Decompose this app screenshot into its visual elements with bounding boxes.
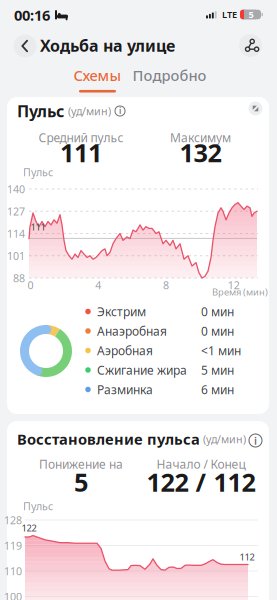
staticText: 0 мин (201, 323, 234, 339)
staticText: 12 (228, 278, 240, 292)
staticText: Пульс (23, 165, 53, 179)
staticText: 8 (163, 278, 169, 292)
staticText: Время (мин) (212, 286, 268, 298)
staticText: 122 / 112 (146, 465, 255, 499)
staticText: 101 (7, 249, 25, 263)
staticText: LTE (222, 8, 237, 21)
staticText: 122 (21, 522, 36, 534)
staticText: 0 (27, 278, 33, 292)
staticText: 132 (179, 136, 221, 169)
staticText: <1 мин (201, 342, 241, 358)
button[interactable]: Подробно (132, 65, 206, 85)
staticText: Максимум (170, 129, 231, 145)
staticText: Экстрим (97, 303, 146, 319)
button[interactable]: About heart rate recovery (249, 434, 262, 447)
staticText: 5 (74, 465, 88, 499)
staticText: 111 (30, 221, 45, 233)
staticText: Пульс (23, 499, 53, 513)
staticText: Сжигание жира (97, 362, 187, 378)
staticText: 128 (4, 513, 22, 527)
button[interactable]: Back (13, 34, 36, 57)
staticText: 5 (248, 8, 253, 21)
staticText: 110 (4, 564, 22, 578)
staticText: Начало / Конец (156, 456, 245, 472)
button[interactable]: Expand chart (248, 101, 262, 115)
staticText: 100 (4, 589, 22, 600)
button[interactable]: About heart rate (115, 106, 125, 116)
button[interactable]: Схемы (73, 65, 121, 93)
staticText: Аэробная (97, 342, 153, 358)
staticText: 6 мин (201, 381, 234, 397)
staticText: Средний пульс (38, 129, 123, 145)
staticText: Пульс (17, 100, 64, 122)
staticText: 4 (95, 278, 101, 292)
staticText: Подробно (132, 65, 206, 85)
staticText: Разминка (97, 381, 153, 397)
staticText: 0 мин (201, 303, 234, 319)
staticText: (уд/мин) (68, 104, 111, 118)
staticText: 127 (7, 204, 25, 218)
staticText: i (254, 433, 257, 448)
staticText: 119 (4, 538, 22, 553)
staticText: 114 (7, 226, 25, 241)
staticText: Схемы (73, 65, 121, 85)
staticText: Восстановление пульса (17, 429, 200, 449)
staticText: 111 (60, 136, 102, 169)
staticText: Ходьба на улице (40, 35, 175, 56)
staticText: Анаэробная (97, 323, 167, 339)
staticText: 00:16 (14, 5, 50, 25)
staticText: 140 (7, 182, 25, 196)
button[interactable]: Share (239, 34, 262, 57)
staticText: Понижение на (39, 456, 123, 472)
staticText: i (119, 106, 121, 116)
staticText: 5 мин (201, 362, 234, 378)
staticText: (уд/мин) (203, 432, 246, 446)
staticText: 88 (13, 271, 25, 285)
staticText: 112 (239, 551, 254, 563)
